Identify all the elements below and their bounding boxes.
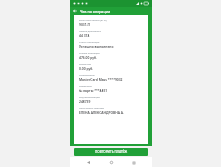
staticText: Успешно выполнено xyxy=(79,44,114,48)
button[interactable]: ПОВТОРИТЬ ПЛАТЁЖ xyxy=(74,148,148,156)
staticText: 0.00 руб. xyxy=(79,66,94,70)
staticText: ЕЛЕНА АЛЕКСАНДРОВНА А. xyxy=(79,110,124,114)
staticText: Статус операции xyxy=(79,40,100,43)
staticText: 9031-П xyxy=(79,22,91,26)
button[interactable]: Back xyxy=(71,7,79,15)
button[interactable]: Home xyxy=(107,158,116,167)
staticText: № карты ***4451 xyxy=(79,88,108,92)
staticText: Чек по операции xyxy=(80,9,152,14)
staticText: Отправитель xyxy=(79,73,95,76)
staticText: ПОВТОРИТЬ ПЛАТЁЖ xyxy=(95,150,128,154)
staticText: Реквизиты xyxy=(79,84,92,87)
staticText: 248739 xyxy=(79,99,91,103)
staticText: MasterCard Mass ****9032 xyxy=(79,77,123,81)
staticText: 476.00 руб. xyxy=(79,55,97,59)
staticText: 44 374 xyxy=(79,33,90,37)
button[interactable]: Back xyxy=(84,158,93,167)
staticText: Банк получателя (БИК) xyxy=(79,18,107,21)
button[interactable]: Recent apps xyxy=(129,158,138,167)
staticText: Код авторизации xyxy=(79,95,100,98)
staticText: Получатель платежа xyxy=(79,106,104,109)
staticText: Сумма операции xyxy=(79,51,100,54)
staticText: Номер документа xyxy=(79,29,101,32)
staticText: Комиссия xyxy=(79,62,91,65)
